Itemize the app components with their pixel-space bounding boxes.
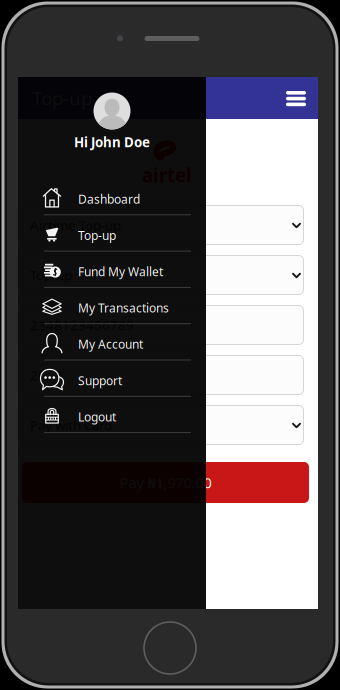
button[interactable]: Top-up (18, 215, 206, 252)
staticText: Top-up (78, 227, 116, 243)
button[interactable]: 2000 (22, 355, 304, 395)
button[interactable]: Fund My Wallet (18, 252, 206, 288)
staticText: 2000 (30, 366, 62, 384)
button[interactable]: My Account (18, 324, 206, 360)
staticText: Logout (78, 409, 116, 425)
staticText: airtel (142, 163, 192, 187)
button[interactable]: Dashboard (18, 179, 206, 215)
button[interactable]: Menu (275, 77, 317, 119)
staticText: My Account (78, 336, 143, 352)
staticText: Airtime Top-up (30, 216, 121, 234)
staticText: Top-up (30, 266, 72, 284)
button[interactable]: Airtime Top-up (22, 205, 304, 245)
staticText: Fund My Wallet (78, 264, 163, 279)
staticText: Top-up (32, 86, 92, 110)
button[interactable]: Pay with Card (22, 405, 304, 445)
staticText: 2348123456789 (30, 316, 134, 334)
button[interactable]: Logout (18, 397, 206, 433)
button[interactable]: Pay ₦1,970.00 (22, 462, 309, 503)
staticText: Dashboard (78, 191, 140, 207)
staticText: Hi John Doe (74, 133, 150, 151)
button[interactable]: 2348123456789 (22, 305, 304, 345)
staticText: Pay ₦1,970.00 (119, 473, 211, 492)
button[interactable]: My Transactions (18, 288, 206, 324)
staticText: Support (78, 372, 122, 388)
staticText: Pay with Card (30, 416, 112, 434)
button[interactable]: Support (18, 360, 206, 397)
staticText: My Transactions (78, 300, 169, 316)
button[interactable]: Top-up (22, 255, 304, 295)
